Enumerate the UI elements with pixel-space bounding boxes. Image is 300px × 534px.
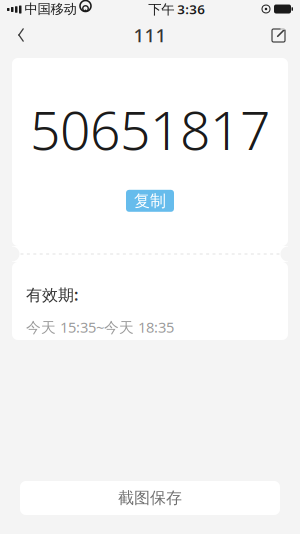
staticText: 下午 3:36 bbox=[148, 0, 205, 18]
staticText: 复制 bbox=[134, 191, 166, 211]
button[interactable]: 复制 bbox=[126, 190, 174, 212]
button[interactable]: Back bbox=[0, 20, 42, 50]
staticText: 有效期: bbox=[26, 284, 78, 305]
staticText: 50651817 bbox=[30, 94, 270, 165]
staticText: 中国移动 bbox=[24, 1, 76, 17]
button[interactable]: Compose bbox=[258, 20, 300, 50]
staticText: 截图保存 bbox=[118, 488, 182, 508]
staticText: 111 bbox=[133, 23, 166, 47]
button[interactable]: 截图保存 bbox=[20, 481, 280, 515]
staticText: 今天 15:35~今天 18:35 bbox=[26, 317, 174, 337]
